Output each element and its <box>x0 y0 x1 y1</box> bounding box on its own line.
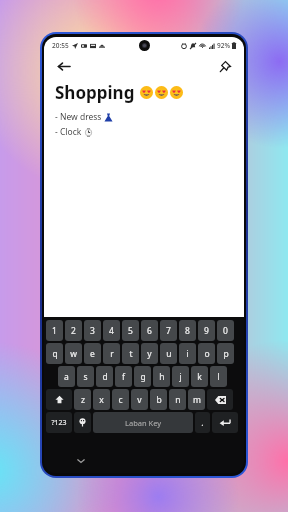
button[interactable]: t <box>122 343 139 364</box>
staticText: f <box>122 371 125 383</box>
staticText: r <box>110 348 114 360</box>
button[interactable]: o <box>198 343 215 364</box>
button[interactable]: 6 <box>141 320 158 341</box>
button[interactable]: 7 <box>160 320 177 341</box>
staticText: v <box>137 394 142 406</box>
button[interactable]: d <box>96 366 113 387</box>
button[interactable]: x <box>93 389 110 410</box>
button[interactable]: 0 <box>217 320 234 341</box>
button[interactable]: Back <box>53 56 73 76</box>
staticText: ?123 <box>51 418 67 428</box>
button[interactable]: 2 <box>65 320 82 341</box>
button[interactable]: 4 <box>103 320 120 341</box>
button[interactable]: Hide keyboard <box>74 454 88 468</box>
staticText: - New dress <box>55 111 104 123</box>
button[interactable]: z <box>74 389 91 410</box>
staticText: . <box>201 417 204 429</box>
button[interactable]: r <box>103 343 120 364</box>
staticText: 9 <box>204 325 209 337</box>
button[interactable]: k <box>191 366 208 387</box>
button[interactable]: Emoji <box>74 412 91 433</box>
button[interactable]: u <box>160 343 177 364</box>
staticText: u <box>166 348 172 360</box>
button[interactable]: g <box>134 366 151 387</box>
button[interactable]: Pin note <box>215 56 235 76</box>
staticText: i <box>186 348 189 360</box>
button[interactable]: s <box>77 366 94 387</box>
staticText: 92% <box>217 41 230 50</box>
button[interactable]: 1 <box>46 320 63 341</box>
button[interactable]: p <box>217 343 234 364</box>
staticText: 0 <box>223 325 228 337</box>
staticText: o <box>204 348 210 360</box>
staticText: 8 <box>185 325 190 337</box>
button[interactable]: w <box>65 343 82 364</box>
button[interactable]: 9 <box>198 320 215 341</box>
staticText: h <box>159 371 165 383</box>
staticText: l <box>217 371 220 383</box>
staticText: j <box>179 371 182 383</box>
button[interactable]: y <box>141 343 158 364</box>
button[interactable]: Space <box>93 412 193 433</box>
button[interactable]: e <box>84 343 101 364</box>
button[interactable]: Shift <box>46 389 72 410</box>
button[interactable]: l <box>210 366 227 387</box>
staticText: 7 <box>166 325 171 337</box>
staticText: a <box>64 371 69 383</box>
staticText: x <box>99 394 104 406</box>
button[interactable]: a <box>58 366 75 387</box>
staticText: c <box>118 394 123 406</box>
staticText: z <box>81 394 85 406</box>
button[interactable]: i <box>179 343 196 364</box>
button[interactable]: 5 <box>122 320 139 341</box>
staticText: e <box>90 348 95 360</box>
button[interactable]: Backspace <box>207 389 233 410</box>
staticText: 6 <box>147 325 152 337</box>
staticText: 2 <box>71 325 76 337</box>
staticText: w <box>70 348 77 360</box>
button[interactable]: h <box>153 366 170 387</box>
staticText: s <box>83 371 88 383</box>
button[interactable]: 3 <box>84 320 101 341</box>
staticText: - Clock <box>55 126 84 138</box>
button[interactable]: m <box>188 389 205 410</box>
staticText: 3 <box>90 325 95 337</box>
staticText: b <box>156 394 162 406</box>
button[interactable]: 8 <box>179 320 196 341</box>
staticText: k <box>197 371 202 383</box>
button[interactable]: c <box>112 389 129 410</box>
button[interactable]: q <box>46 343 63 364</box>
button[interactable]: j <box>172 366 189 387</box>
staticText: 5 <box>128 325 133 337</box>
staticText: d <box>102 371 108 383</box>
staticText: t <box>129 348 133 360</box>
button[interactable]: v <box>131 389 148 410</box>
staticText: q <box>52 348 58 360</box>
staticText: y <box>147 348 152 360</box>
staticText: Shopping <box>55 81 139 104</box>
button[interactable]: . <box>195 412 210 433</box>
staticText: p <box>223 348 229 360</box>
staticText: 4 <box>109 325 114 337</box>
button[interactable]: ?123 <box>46 412 72 433</box>
button[interactable]: n <box>169 389 186 410</box>
button[interactable]: Enter <box>212 412 238 433</box>
staticText: n <box>175 394 181 406</box>
staticText: Laban Key <box>125 418 162 428</box>
staticText: 1 <box>52 325 57 337</box>
staticText: 20:55 <box>52 41 69 50</box>
staticText: m <box>193 394 201 406</box>
button[interactable]: f <box>115 366 132 387</box>
button[interactable]: b <box>150 389 167 410</box>
staticText: g <box>140 371 146 383</box>
